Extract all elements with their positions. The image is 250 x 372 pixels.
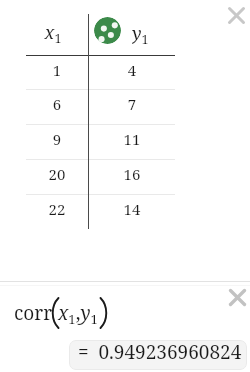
staticText: 1 [26,60,88,82]
button[interactable]: 9 [26,129,88,151]
staticText: x1,y1 [58,300,98,328]
button[interactable]: 16 [88,164,176,186]
staticText: = 0.949236960824 [78,340,242,365]
button[interactable]: = 0.949236960824 [69,340,247,370]
button[interactable]: corr [0,296,120,330]
button[interactable]: Close table [228,7,245,24]
staticText: corr [14,300,53,326]
button[interactable]: 6 [26,94,88,116]
staticText: 14 [88,199,176,221]
staticText: 16 [88,164,176,186]
button[interactable]: 1 [26,60,88,82]
button[interactable]: Generate random data [94,17,121,44]
button[interactable]: 7 [88,94,176,116]
button[interactable]: Close expression [229,289,246,306]
staticText: 7 [88,94,176,116]
button[interactable]: x1 [22,20,84,44]
staticText: 22 [26,199,88,221]
button[interactable]: 11 [88,129,176,151]
button[interactable]: 20 [26,164,88,186]
button[interactable]: y1 [132,21,162,45]
staticText: y1 [132,21,149,45]
staticText: 6 [26,94,88,116]
button[interactable]: 14 [88,199,176,221]
staticText: 4 [88,60,176,82]
staticText: 20 [26,164,88,186]
button[interactable]: 4 [88,60,176,82]
staticText: 9 [26,129,88,151]
staticText: x1 [22,20,84,44]
button[interactable]: 22 [26,199,88,221]
staticText: 11 [88,129,176,151]
